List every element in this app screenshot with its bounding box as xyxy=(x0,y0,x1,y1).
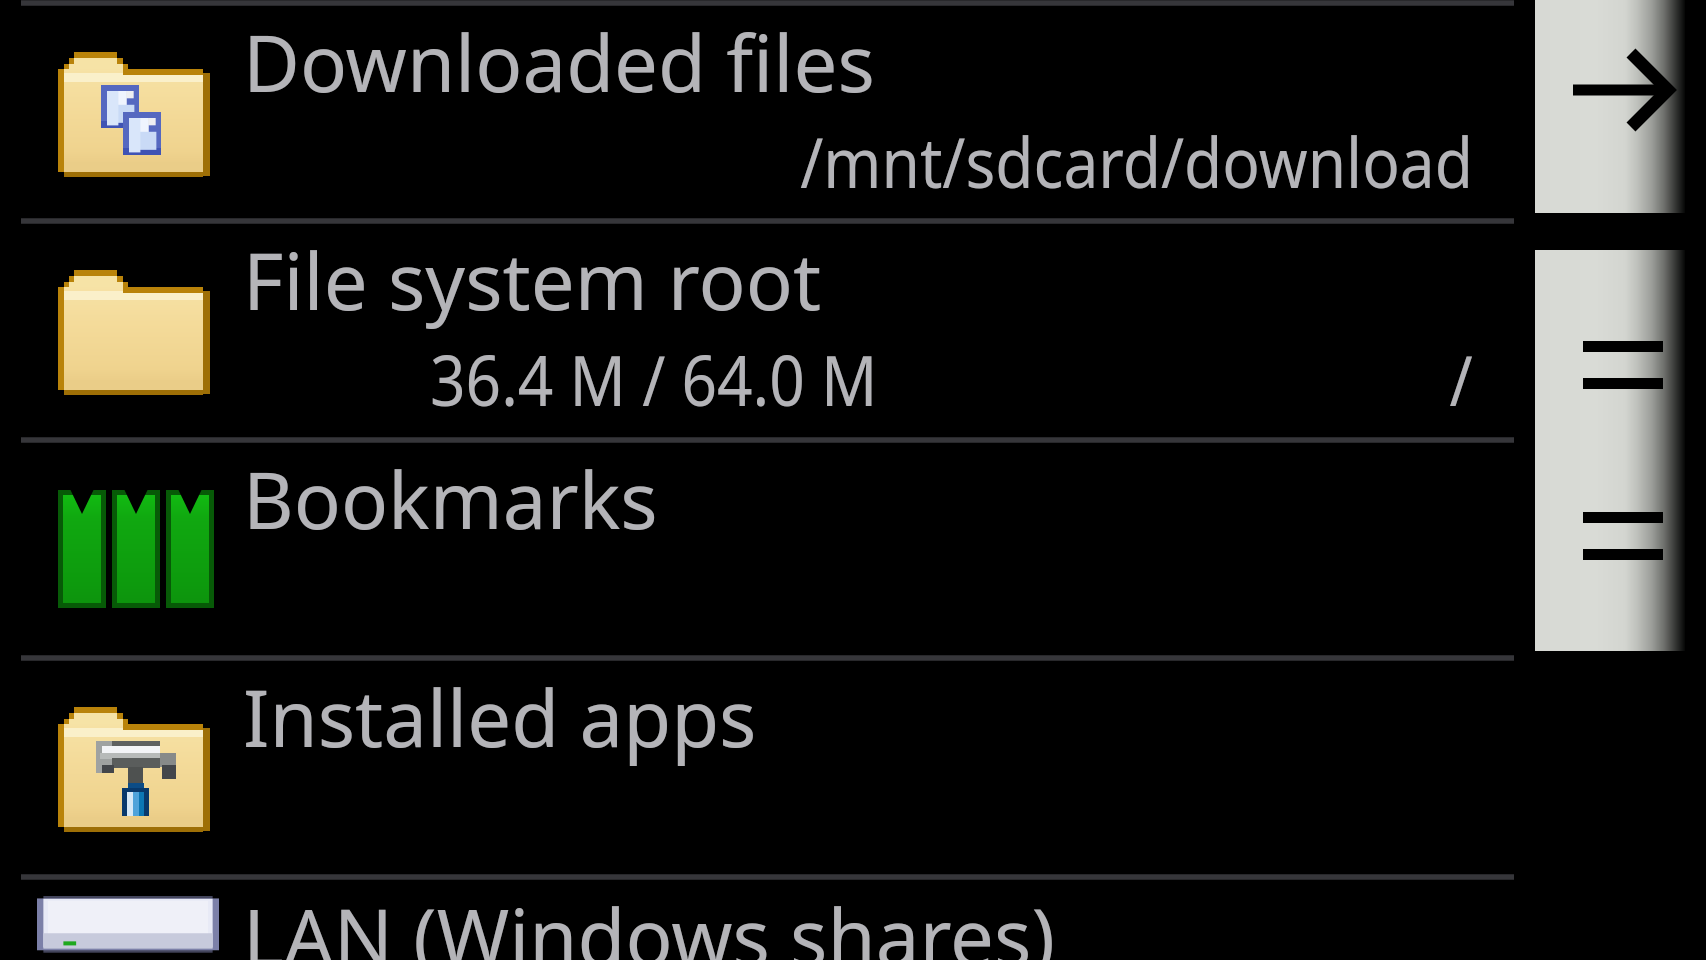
staticText: Downloaded files xyxy=(243,9,875,115)
staticText: File system root xyxy=(243,227,822,333)
button[interactable]: Bookmarks xyxy=(0,442,1706,658)
button[interactable]: Go to folder xyxy=(1535,0,1685,213)
staticText: Installed apps xyxy=(243,664,757,770)
button[interactable]: Installed apps xyxy=(0,660,1706,877)
staticText: /mnt/sdcard/download xyxy=(800,115,1473,208)
staticText: Bookmarks xyxy=(243,446,658,552)
button[interactable]: LAN (Windows shares) xyxy=(0,879,1706,960)
staticText: 36.4 M / 64.0 M xyxy=(430,333,878,426)
button[interactable]: Downloaded files xyxy=(0,5,1706,221)
button[interactable]: Equalize panels xyxy=(1535,250,1685,651)
staticText: LAN (Windows shares) xyxy=(243,883,1055,960)
button[interactable]: File system root xyxy=(0,223,1706,440)
staticText: / xyxy=(1449,333,1473,426)
